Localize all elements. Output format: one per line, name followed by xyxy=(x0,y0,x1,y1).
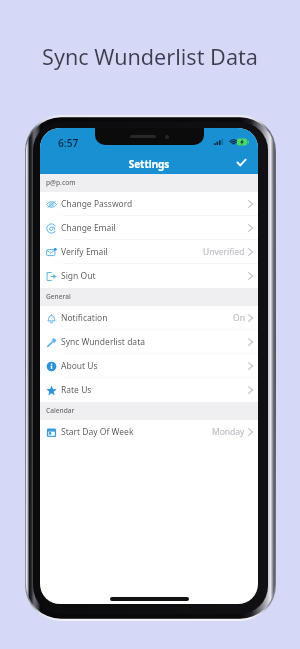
button[interactable]: About Us xyxy=(40,354,258,378)
staticText: Sync Wunderlist Data xyxy=(0,42,300,71)
button[interactable]: Notification xyxy=(40,306,258,330)
button[interactable]: Sign Out xyxy=(40,264,258,288)
staticText: About Us xyxy=(61,360,98,372)
staticText: Change Email xyxy=(61,222,116,234)
button[interactable]: Verify Email xyxy=(40,240,258,264)
staticText: Notification xyxy=(61,312,108,324)
staticText: Monday xyxy=(212,426,245,438)
staticText: General xyxy=(46,292,71,301)
staticText: Sign Out xyxy=(61,270,96,282)
button[interactable]: Change Password xyxy=(40,192,258,216)
staticText: 6:57 xyxy=(58,136,79,150)
staticText: p@p.com xyxy=(46,178,76,187)
button[interactable]: Start Day Of Week xyxy=(40,420,258,444)
button[interactable]: Rate Us xyxy=(40,378,258,402)
staticText: Settings xyxy=(40,157,258,170)
staticText: Verify Email xyxy=(61,246,108,258)
staticText: Start Day Of Week xyxy=(61,426,134,438)
staticText: Sync Wunderlist data xyxy=(61,336,145,348)
button[interactable]: Done xyxy=(233,154,249,170)
staticText: On xyxy=(233,312,245,324)
button[interactable]: Change Email xyxy=(40,216,258,240)
staticText: Calendar xyxy=(46,406,75,415)
staticText: Unverified xyxy=(203,246,245,258)
button[interactable]: Sync Wunderlist data xyxy=(40,330,258,354)
staticText: Change Password xyxy=(61,198,133,210)
staticText: Rate Us xyxy=(61,384,92,396)
